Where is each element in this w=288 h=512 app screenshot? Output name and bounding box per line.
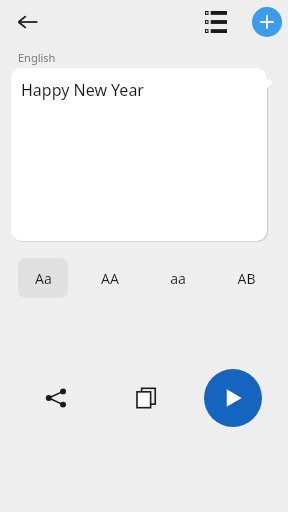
staticText: Aa [35,269,52,288]
button[interactable]: Add [252,7,282,37]
staticText: AB [237,269,256,288]
button[interactable]: Share [36,378,76,418]
button[interactable]: History list [200,6,232,38]
staticText: English [18,50,56,65]
staticText: aa [170,269,186,288]
button[interactable]: Play [204,369,262,427]
staticText: Happy New Year [21,79,144,101]
staticText: AA [101,269,119,288]
button[interactable]: AA [85,258,135,298]
button[interactable]: Back [12,6,44,38]
button[interactable]: AB [221,258,271,298]
button[interactable]: Aa [18,258,68,298]
button[interactable]: Copy [126,378,166,418]
button[interactable]: aa [153,258,203,298]
